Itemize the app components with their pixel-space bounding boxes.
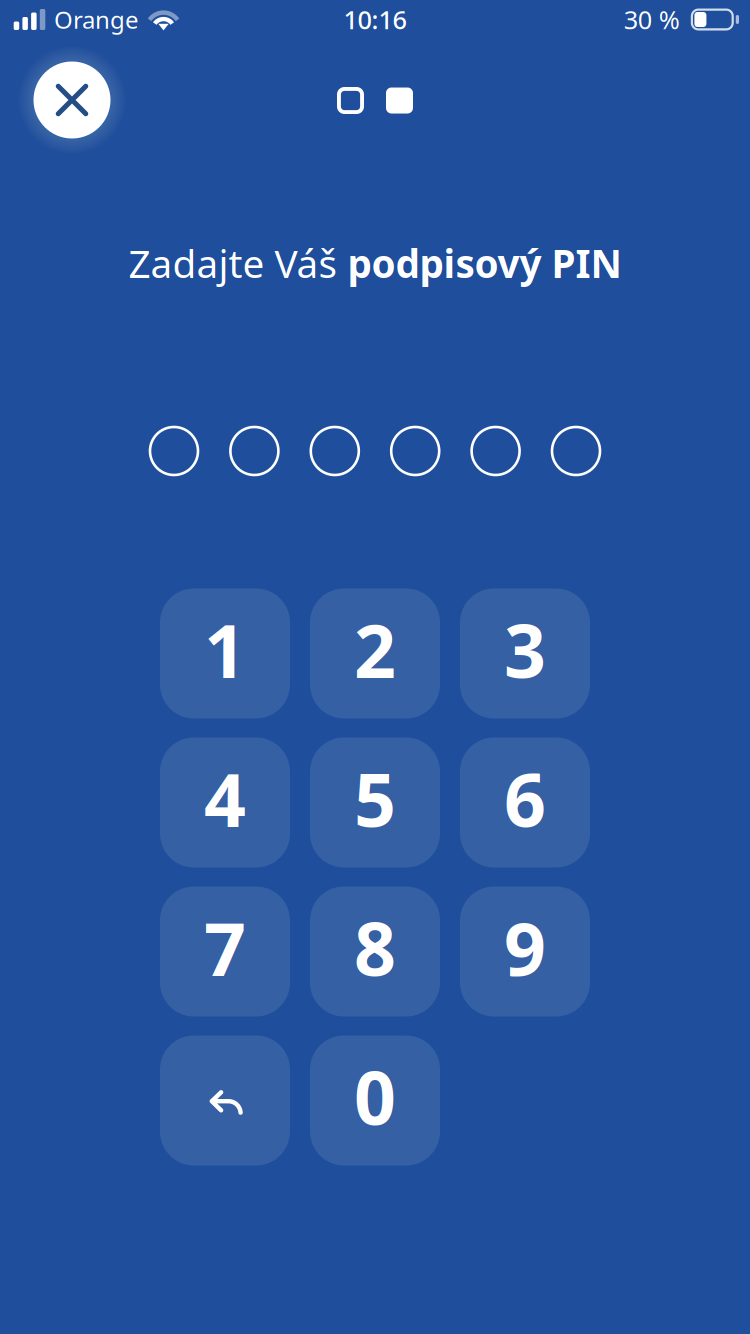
button[interactable]: 8	[310, 886, 440, 1016]
button[interactable]: 6	[460, 737, 590, 867]
button[interactable]: 5	[310, 737, 440, 867]
staticText: 2	[354, 601, 396, 698]
staticText: 4	[204, 750, 246, 847]
staticText: 30 %	[624, 3, 680, 36]
button[interactable]: 4	[160, 737, 290, 867]
staticText: 9	[504, 899, 546, 996]
button[interactable]: 9	[460, 886, 590, 1016]
staticText: Orange	[54, 4, 139, 35]
button[interactable]: Close	[28, 56, 116, 144]
staticText: 5	[354, 750, 396, 847]
button[interactable]: Delete	[160, 1035, 290, 1165]
button[interactable]: 3	[460, 588, 590, 718]
staticText: 10:16	[343, 3, 406, 36]
staticText: 0	[354, 1048, 396, 1145]
button[interactable]: 1	[160, 588, 290, 718]
button[interactable]: 7	[160, 886, 290, 1016]
staticText: podpisový PIN	[347, 237, 621, 289]
staticText: Zadajte Váš	[128, 237, 347, 289]
button[interactable]: 0	[310, 1035, 440, 1165]
staticText: 8	[354, 899, 396, 996]
staticText: 6	[504, 750, 546, 847]
staticText: 7	[204, 899, 246, 996]
staticText: 1	[204, 601, 246, 698]
button[interactable]: 2	[310, 588, 440, 718]
staticText: 3	[504, 601, 546, 698]
